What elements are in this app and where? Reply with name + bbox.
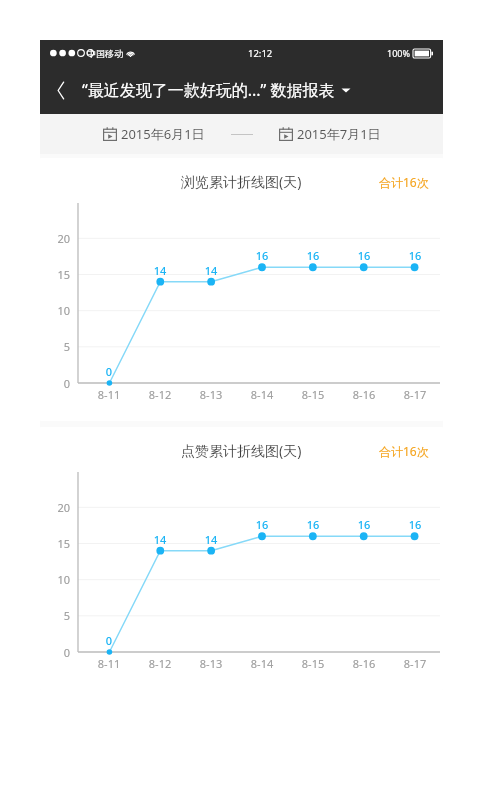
staticText: 8-17	[390, 387, 440, 402]
staticText: 10	[40, 303, 70, 318]
staticText: 10	[40, 572, 70, 587]
staticText: 20	[40, 231, 70, 246]
staticText: 8-13	[186, 387, 236, 402]
staticText: 16	[242, 517, 282, 532]
button[interactable]: 浏览累计折线图(天)	[40, 158, 443, 421]
button[interactable]: “最近发现了一款好玩的...” 数据报表	[82, 66, 435, 114]
staticText: 12:12	[248, 47, 273, 60]
staticText: 8-12	[135, 656, 185, 671]
staticText: 14	[140, 263, 180, 278]
staticText: 2015年6月1日	[121, 125, 205, 143]
staticText: 16	[242, 248, 282, 263]
staticText: 0	[89, 633, 129, 648]
staticText: 合计16次	[379, 174, 429, 190]
button[interactable]: 点赞累计折线图(天)	[40, 427, 443, 690]
staticText: 16	[395, 248, 435, 263]
staticText: 100%	[387, 47, 410, 59]
staticText: 0	[40, 645, 70, 660]
staticText: 浏览累计折线图(天)	[181, 172, 302, 191]
staticText: 0	[40, 376, 70, 391]
button[interactable]: 2015年6月1日	[40, 114, 443, 154]
staticText: 8-17	[390, 656, 440, 671]
staticText: 15	[40, 267, 70, 282]
staticText: 16	[293, 517, 333, 532]
staticText: 8-12	[135, 387, 185, 402]
staticText: 8-11	[84, 656, 134, 671]
staticText: 14	[140, 532, 180, 547]
staticText: 8-14	[237, 387, 287, 402]
staticText: 8-15	[288, 656, 338, 671]
button[interactable]: Back	[40, 66, 82, 114]
staticText: 16	[344, 248, 384, 263]
staticText: 中国移动	[87, 48, 123, 59]
staticText: 8-13	[186, 656, 236, 671]
staticText: 16	[293, 248, 333, 263]
staticText: 8-16	[339, 387, 389, 402]
staticText: 8-15	[288, 387, 338, 402]
staticText: 8-11	[84, 387, 134, 402]
staticText: 14	[191, 532, 231, 547]
staticText: 点赞累计折线图(天)	[181, 441, 302, 460]
staticText: 8-14	[237, 656, 287, 671]
staticText: “最近发现了一款好玩的...” 数据报表	[82, 79, 335, 101]
staticText: 5	[40, 339, 70, 354]
staticText: 8-16	[339, 656, 389, 671]
staticText: 16	[344, 517, 384, 532]
staticText: 0	[89, 364, 129, 379]
staticText: 5	[40, 608, 70, 623]
staticText: 16	[395, 517, 435, 532]
staticText: 15	[40, 536, 70, 551]
staticText: 2015年7月1日	[297, 125, 381, 143]
staticText: 合计16次	[379, 443, 429, 459]
staticText: 14	[191, 263, 231, 278]
staticText: 20	[40, 500, 70, 515]
